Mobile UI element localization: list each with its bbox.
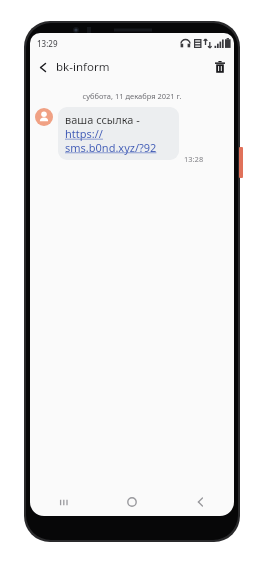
button[interactable]: Delete	[209, 56, 231, 78]
staticText: ваша ссылка - https://sms.b0nd.xyz/?92	[65, 112, 172, 155]
button[interactable]: ваша ссылка - https://sms.b0nd.xyz/?92	[58, 107, 179, 160]
staticText: 13:28	[184, 154, 204, 164]
staticText: 13:29	[37, 38, 58, 49]
button[interactable]: Recents	[30, 488, 98, 516]
button[interactable]: Home	[98, 488, 166, 516]
button[interactable]: Contact avatar	[35, 108, 53, 126]
staticText: суббота, 11 декабря 2021 г.	[30, 91, 234, 101]
button[interactable]: Back	[166, 488, 234, 516]
button[interactable]: Back	[32, 56, 54, 78]
staticText: bk-inform	[56, 59, 110, 75]
